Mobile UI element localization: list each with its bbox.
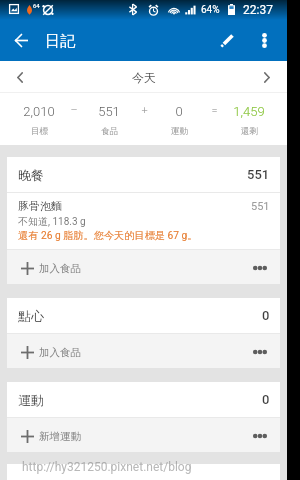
staticText: 0 (262, 392, 270, 407)
button[interactable]: 晚餐 (7, 157, 280, 192)
button[interactable]: Previous day (0, 61, 40, 93)
staticText: 64% (201, 4, 220, 16)
staticText: + (141, 104, 148, 117)
button[interactable]: More options (246, 418, 274, 452)
staticText: 還有 26 g 脂肪。您今天的目標是 67 g。 (18, 229, 198, 242)
button[interactable]: 豚骨泡麵 (7, 193, 280, 249)
staticText: = (211, 104, 218, 117)
staticText: 加入食品 (39, 262, 81, 275)
staticText: 1,459 (233, 104, 265, 119)
staticText: 加入食品 (39, 346, 81, 359)
staticText: 551 (251, 200, 270, 213)
button[interactable]: More options (246, 250, 274, 284)
button[interactable]: 點心 (7, 298, 280, 333)
staticText: 運動 (18, 392, 44, 408)
button[interactable]: Back (1, 20, 41, 61)
button[interactable]: 運動 (7, 382, 280, 417)
staticText: 0 (262, 308, 270, 323)
staticText: 64 (33, 2, 40, 9)
staticText: 新增運動 (39, 430, 81, 443)
staticText: 晚餐 (18, 167, 44, 183)
staticText: 還剩 (241, 126, 258, 137)
staticText: 豚骨泡麵 (18, 199, 62, 213)
staticText: 食品 (101, 126, 118, 137)
staticText: 551 (247, 167, 270, 182)
staticText: 2,010 (23, 104, 55, 119)
button[interactable]: More options (244, 20, 285, 61)
button[interactable]: 加入食品 (7, 334, 280, 368)
staticText: – (70, 104, 78, 117)
staticText: http://hy321250.pixnet.net/blog (22, 460, 192, 474)
button[interactable]: Edit (207, 20, 247, 61)
button[interactable]: Next day (247, 61, 287, 93)
button[interactable]: 新增運動 (7, 418, 280, 452)
staticText: 22:37 (243, 3, 273, 17)
staticText: 今天 (132, 70, 156, 85)
staticText: 點心 (18, 308, 44, 324)
staticText: 551 (98, 104, 120, 119)
button[interactable]: More options (246, 334, 274, 368)
button[interactable]: 加入食品 (7, 250, 280, 284)
staticText: 0 (175, 104, 183, 119)
staticText: 不知道, 118.3 g (18, 215, 86, 228)
staticText: 運動 (171, 126, 188, 137)
staticText: 日記 (45, 32, 75, 51)
staticText: 目標 (31, 126, 48, 137)
